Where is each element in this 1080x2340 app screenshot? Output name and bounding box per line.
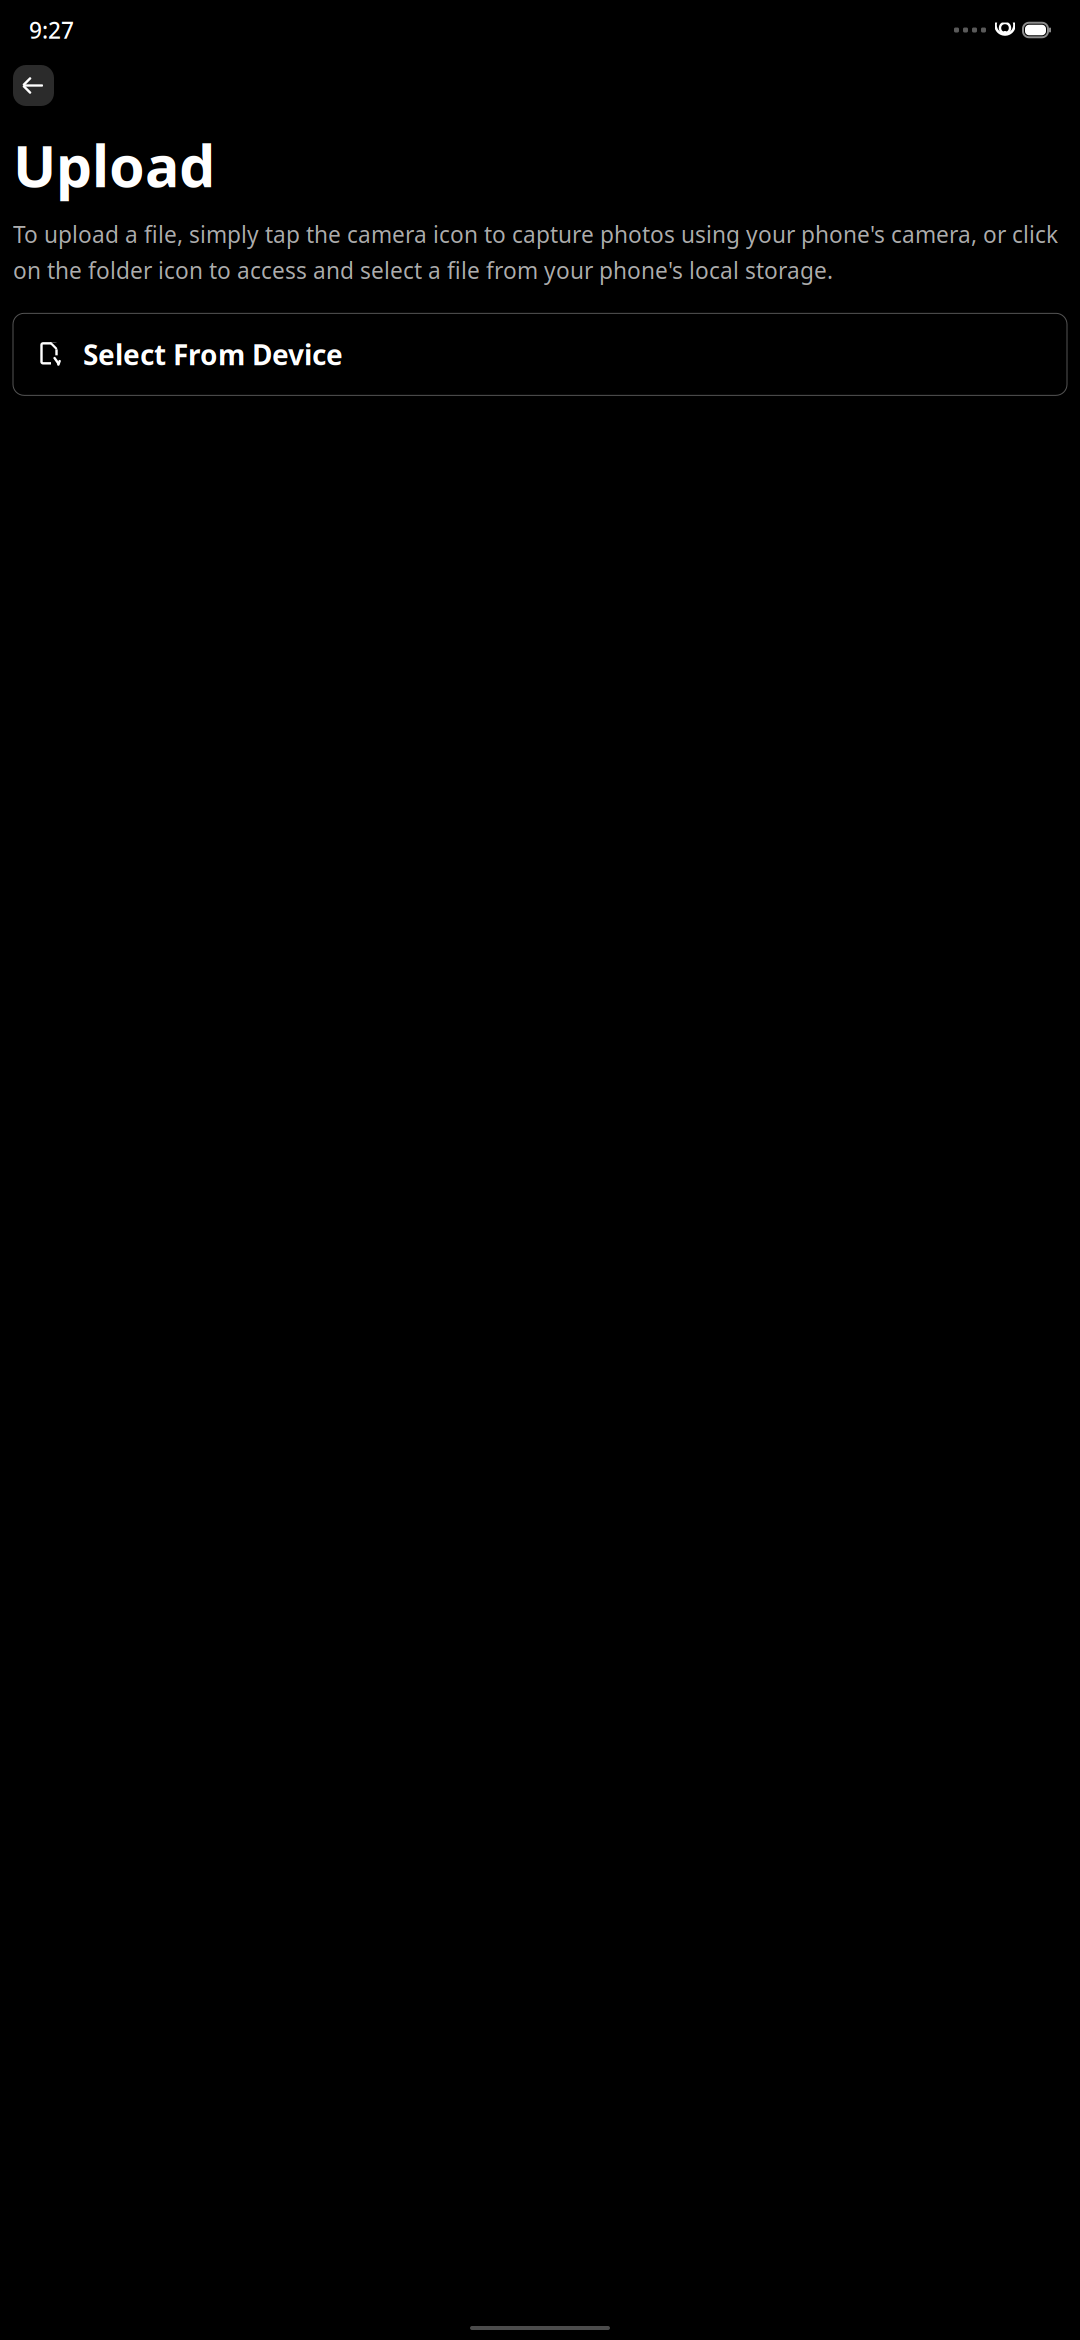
button[interactable]: Back bbox=[13, 65, 54, 106]
button[interactable]: Select From Device bbox=[13, 313, 1067, 395]
staticText: Select From Device bbox=[83, 336, 343, 373]
staticText: Upload bbox=[13, 127, 215, 203]
staticText: To upload a file, simply tap the camera … bbox=[13, 219, 1058, 285]
staticText: 9:27 bbox=[29, 15, 74, 45]
